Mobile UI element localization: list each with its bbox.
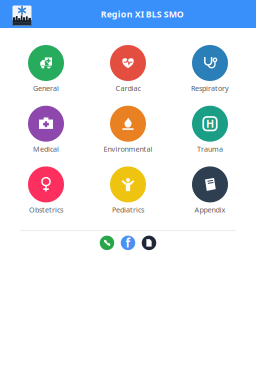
button[interactable]: Call [100,236,114,250]
staticText: Environmental [103,144,152,154]
button[interactable]: General [5,45,87,93]
button[interactable]: Medical [5,106,87,154]
staticText: Trauma [197,144,223,154]
button[interactable]: Cardiac [87,45,169,93]
button[interactable]: Respiratory [169,45,251,93]
staticText: Region XI BLS SMO [101,8,184,20]
staticText: Medical [33,144,59,154]
staticText: Pediatrics [112,205,144,215]
button[interactable]: Appendix [169,166,251,215]
staticText: f [125,235,130,251]
staticText: Obstetrics [29,205,63,215]
button[interactable]: Region XI BLS SMO [0,0,39,28]
staticText: Appendix [194,205,225,215]
staticText: Respiratory [191,83,229,93]
button[interactable]: Environmental [87,106,169,154]
staticText: H [206,117,214,131]
staticText: Cardiac [115,83,140,93]
button[interactable]: Documents [142,236,156,250]
button[interactable]: Facebook [121,236,135,250]
button[interactable]: H [169,106,251,154]
staticText: General [33,83,59,93]
button[interactable]: Pediatrics [87,166,169,215]
button[interactable]: Obstetrics [5,166,87,215]
